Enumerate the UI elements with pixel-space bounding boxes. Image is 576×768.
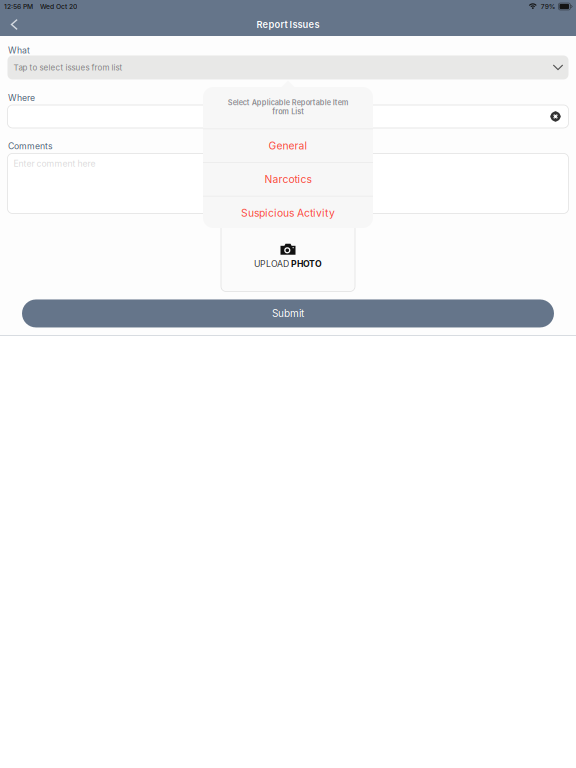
button[interactable]: General bbox=[203, 129, 373, 162]
button[interactable]: Suspicious Activity bbox=[203, 196, 373, 229]
staticText: UPLOAD bbox=[254, 259, 291, 269]
staticText: What bbox=[8, 45, 30, 55]
staticText: Wed Oct 20 bbox=[40, 2, 77, 11]
staticText: 79% bbox=[541, 2, 556, 11]
staticText: PHOTO bbox=[291, 259, 322, 269]
button[interactable]: Back bbox=[0, 13, 28, 36]
staticText: Submit bbox=[272, 307, 304, 319]
staticText: Tap to select issues from list bbox=[13, 63, 122, 72]
staticText: Suspicious Activity bbox=[241, 207, 335, 219]
staticText: 12:56 PM bbox=[4, 2, 33, 11]
button[interactable]: Use current location bbox=[547, 108, 563, 124]
staticText: Report Issues bbox=[256, 19, 319, 30]
button[interactable]: Submit bbox=[22, 299, 554, 327]
staticText: Where bbox=[8, 92, 35, 103]
staticText: Comments bbox=[8, 141, 53, 151]
button[interactable]: UPLOAD bbox=[221, 221, 355, 291]
staticText: Enter comment here bbox=[13, 158, 95, 169]
button[interactable]: Tap to select issues from list bbox=[7, 55, 568, 79]
staticText: Narcotics bbox=[264, 173, 311, 185]
staticText: Select Applicable Reportable Item from L… bbox=[227, 98, 348, 116]
staticText: General bbox=[268, 139, 307, 152]
button[interactable]: Narcotics bbox=[203, 163, 373, 196]
